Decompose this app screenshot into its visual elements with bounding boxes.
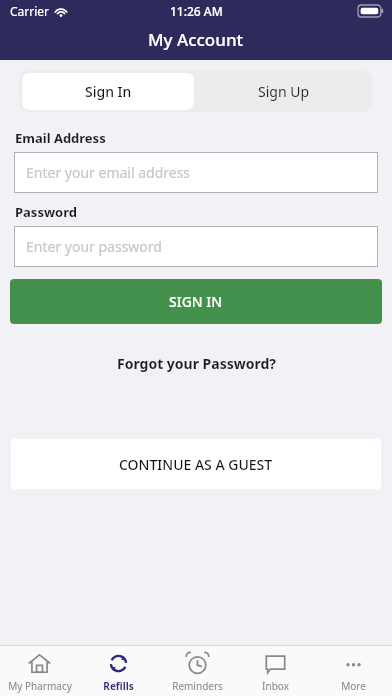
button[interactable]: Inbox xyxy=(236,646,314,696)
staticText: My Account xyxy=(148,28,244,51)
button[interactable]: CONTINUE AS A GUEST xyxy=(11,439,381,489)
button[interactable]: My Pharmacy xyxy=(0,646,79,696)
staticText: Sign In xyxy=(85,82,132,101)
button[interactable]: Refills xyxy=(79,646,158,696)
staticText: My Pharmacy xyxy=(8,679,72,693)
staticText: Reminders xyxy=(172,679,223,693)
staticText: Carrier xyxy=(10,3,50,19)
staticText: Refills xyxy=(103,679,134,693)
staticText: 11:26 AM xyxy=(170,3,223,19)
staticText: CONTINUE AS A GUEST xyxy=(119,455,273,474)
button[interactable]: SIGN IN xyxy=(10,279,382,324)
staticText: Enter your email address xyxy=(26,163,191,182)
button[interactable]: Enter your password xyxy=(14,226,378,267)
staticText: Enter your password xyxy=(26,237,162,256)
staticText: Sign Up xyxy=(258,82,310,101)
staticText: Email Address xyxy=(15,129,106,147)
staticText: Inbox xyxy=(262,679,289,693)
staticText: Password xyxy=(15,203,77,221)
button[interactable]: Sign In xyxy=(22,73,194,110)
button[interactable]: Sign Up xyxy=(196,71,372,112)
staticText: SIGN IN xyxy=(169,292,223,311)
button[interactable]: More xyxy=(314,646,392,696)
staticText: More xyxy=(341,679,366,693)
button[interactable]: Reminders xyxy=(158,646,236,696)
button[interactable]: Enter your email address xyxy=(14,152,378,193)
button[interactable]: Forgot your Password? xyxy=(113,350,280,377)
